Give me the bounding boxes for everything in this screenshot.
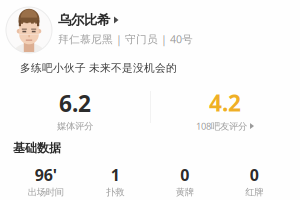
staticText: 96' bbox=[35, 164, 57, 185]
staticText: 6.2 bbox=[59, 88, 91, 118]
staticText: 0 bbox=[180, 164, 189, 185]
staticText: 扑救 bbox=[106, 186, 124, 198]
staticText: 媒体评分 bbox=[57, 120, 93, 132]
staticText: 乌尔比希 bbox=[58, 12, 110, 28]
staticText: 拜仁慕尼黑 | 守门员 | 40号 bbox=[58, 32, 193, 46]
button[interactable]: 4.2 bbox=[150, 88, 300, 132]
staticText: 红牌 bbox=[245, 186, 263, 198]
staticText: 1 bbox=[111, 164, 120, 185]
staticText: 4.2 bbox=[209, 88, 241, 118]
staticText: 黄牌 bbox=[176, 186, 194, 198]
staticText: 出场时间 bbox=[28, 186, 64, 198]
staticText: 108吧友评分 bbox=[196, 120, 247, 132]
staticText: 多练吧小伙子 未来不是没机会的 bbox=[20, 61, 177, 74]
button[interactable]: 乌尔比希 bbox=[0, 0, 300, 56]
staticText: 基础数据 bbox=[13, 141, 61, 155]
staticText: 0 bbox=[250, 164, 259, 185]
